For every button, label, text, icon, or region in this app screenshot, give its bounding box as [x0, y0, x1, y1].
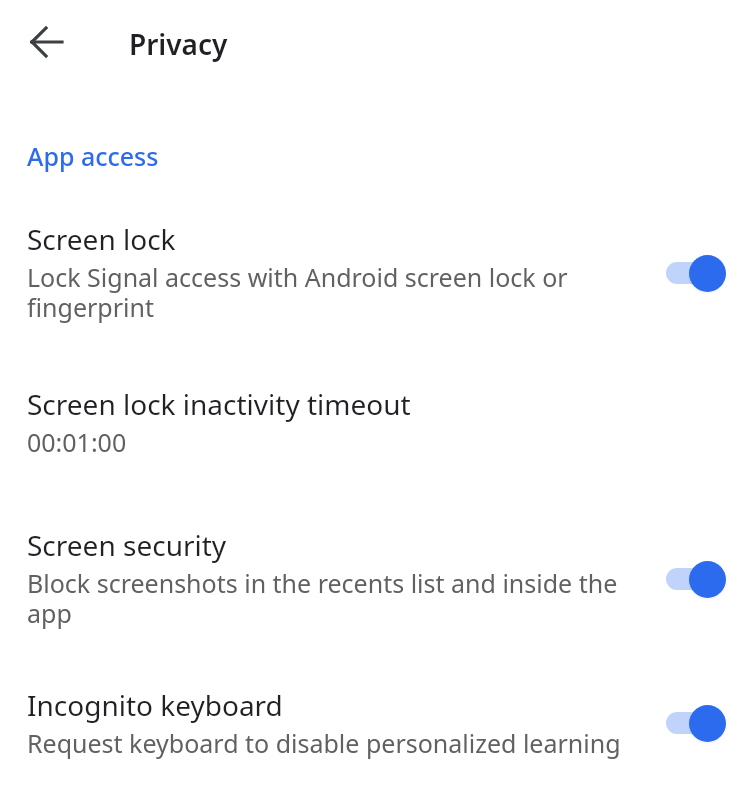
button[interactable]: Screen lock inactivity timeout [0, 385, 744, 459]
staticText: Screen security [27, 526, 227, 564]
staticText: Privacy [129, 25, 228, 63]
button[interactable] [666, 253, 726, 293]
button[interactable] [30, 26, 64, 58]
staticText: Request keyboard to disable personalized… [27, 726, 621, 760]
button[interactable]: Screen lock [0, 220, 744, 325]
staticText: 00:01:00 [27, 425, 127, 459]
staticText: Screen lock inactivity timeout [27, 385, 411, 423]
staticText: App access [27, 139, 159, 173]
button[interactable] [666, 703, 726, 743]
staticText: Block screenshots in the recents list an… [27, 566, 627, 631]
staticText: Screen lock [27, 220, 176, 258]
staticText: Lock Signal access with Android screen l… [27, 260, 627, 325]
button[interactable] [666, 559, 726, 599]
staticText: Incognito keyboard [27, 686, 283, 724]
button[interactable]: Incognito keyboard [0, 686, 744, 760]
button[interactable]: Screen security [0, 526, 744, 631]
